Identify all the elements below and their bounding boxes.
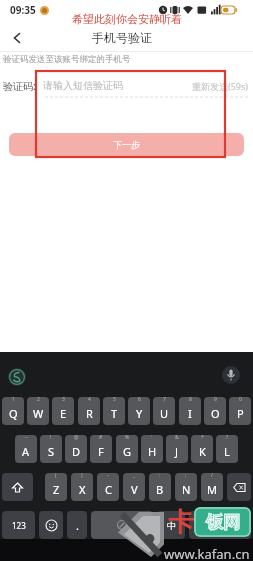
button[interactable]: ( <box>45 473 67 501</box>
staticText: D <box>72 444 81 459</box>
button[interactable]: 1 <box>2 397 24 425</box>
button[interactable] <box>91 511 153 539</box>
button[interactable]: ; <box>175 473 197 501</box>
button[interactable]: 5 <box>103 397 125 425</box>
staticText: I <box>188 406 192 421</box>
staticText: 下一步 <box>113 139 140 150</box>
button[interactable]: / <box>201 473 223 501</box>
button[interactable]: 中 <box>157 511 185 539</box>
staticText: @ <box>74 435 79 441</box>
button[interactable]: % <box>116 435 138 463</box>
staticText: 重新发送(59s) <box>192 80 249 92</box>
button[interactable]: 7 <box>153 397 175 425</box>
staticText: 8 <box>189 397 192 403</box>
staticText: Q <box>9 406 18 421</box>
staticText: H <box>148 444 157 459</box>
staticText: 7 <box>163 397 166 403</box>
staticText: www.kafan.cn <box>164 545 250 561</box>
staticText: R <box>86 406 93 421</box>
staticText: A <box>22 444 30 459</box>
button[interactable] <box>2 473 33 501</box>
staticText: B <box>156 482 164 497</box>
button[interactable] <box>39 511 63 539</box>
staticText: ? <box>226 435 229 441</box>
staticText: / <box>211 473 213 479</box>
button[interactable]: @ <box>65 435 87 463</box>
button[interactable]: 6 <box>128 397 150 425</box>
staticText: 饭网 <box>206 512 240 533</box>
staticText: 卡 <box>168 506 194 539</box>
staticText: 手机号验证 <box>92 30 152 45</box>
staticText: S <box>48 444 55 459</box>
staticText: U <box>160 406 169 421</box>
staticText: T <box>111 406 118 421</box>
staticText: # <box>99 435 103 441</box>
staticText: W <box>33 406 44 421</box>
staticText: 09:35 <box>10 3 36 17</box>
staticText: 1 <box>12 397 15 403</box>
button[interactable]: * <box>191 435 213 463</box>
staticText: O <box>211 406 220 421</box>
button[interactable] <box>189 511 251 539</box>
staticText: * <box>201 435 204 441</box>
staticText: 中 <box>167 520 176 531</box>
staticText: % <box>125 435 130 441</box>
staticText: C <box>105 482 112 497</box>
staticText: G <box>123 444 132 459</box>
staticText: ) <box>81 473 83 479</box>
staticText: - <box>107 473 109 479</box>
staticText: . <box>76 518 79 533</box>
button[interactable]: - <box>97 473 119 501</box>
button[interactable]: 8 <box>179 397 201 425</box>
button[interactable]: ' <box>141 435 163 463</box>
staticText: ( <box>55 473 57 479</box>
staticText: E <box>60 406 67 421</box>
button[interactable]: . <box>67 511 87 539</box>
staticText: N <box>182 482 191 497</box>
staticText: ; <box>185 473 187 479</box>
staticText: 5 <box>113 397 116 403</box>
staticText: P <box>237 406 244 421</box>
button[interactable]: 123 <box>2 511 35 539</box>
button[interactable]: : <box>149 473 171 501</box>
staticText: 6 <box>138 397 141 403</box>
button[interactable] <box>222 366 240 384</box>
button[interactable]: 0 <box>229 397 251 425</box>
staticText: 9 <box>214 397 217 403</box>
staticText: ' <box>151 435 153 441</box>
button[interactable]: 验证码: <box>0 71 253 98</box>
staticText: Z <box>53 482 60 497</box>
button[interactable]: 下一步 <box>9 133 244 156</box>
staticText: 3 <box>62 397 65 403</box>
button[interactable]: ? <box>216 435 238 463</box>
button[interactable] <box>8 29 26 47</box>
staticText: : <box>159 473 161 479</box>
staticText: ! <box>50 435 52 441</box>
button[interactable]: & <box>166 435 188 463</box>
button[interactable]: 4 <box>78 397 100 425</box>
staticText: X <box>79 482 86 497</box>
button[interactable] <box>8 368 26 386</box>
staticText: & <box>175 435 179 441</box>
button[interactable]: ~ <box>15 435 37 463</box>
button[interactable] <box>227 473 251 501</box>
staticText: _ <box>133 473 136 479</box>
staticText: Y <box>136 406 143 421</box>
staticText: V <box>131 482 138 497</box>
staticText: F <box>98 444 104 459</box>
staticText: 2 <box>37 397 40 403</box>
staticText: M <box>207 482 217 497</box>
button[interactable]: # <box>90 435 112 463</box>
staticText: ~ <box>25 435 28 441</box>
staticText: 希望此刻你会安静听着 <box>72 12 182 26</box>
button[interactable]: ! <box>40 435 62 463</box>
staticText: 验证码: <box>3 79 36 93</box>
button[interactable]: 9 <box>204 397 226 425</box>
staticText: 4 <box>88 397 91 403</box>
button[interactable]: ) <box>71 473 93 501</box>
staticText: 验证码发送至该账号绑定的手机号 <box>3 54 131 65</box>
button[interactable]: _ <box>123 473 145 501</box>
button[interactable]: 2 <box>27 397 49 425</box>
staticText: 123 <box>12 520 26 531</box>
button[interactable]: 3 <box>52 397 74 425</box>
